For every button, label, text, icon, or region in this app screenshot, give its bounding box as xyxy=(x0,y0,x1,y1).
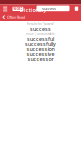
staticText: Often Read xyxy=(7,14,25,20)
staticText: succession xyxy=(26,45,54,53)
button[interactable]: Bookmarks xyxy=(73,5,80,12)
staticText: Dictionary xyxy=(19,6,46,13)
button[interactable]: Menu xyxy=(1,4,9,13)
staticText: success xyxy=(42,6,56,11)
staticText: Results for “success” xyxy=(27,22,54,26)
button[interactable]: Often Read xyxy=(2,14,25,20)
staticText: successfully xyxy=(25,40,56,48)
staticText: successor xyxy=(27,55,53,63)
staticText: successive xyxy=(26,50,54,58)
staticText: successful xyxy=(27,35,54,43)
staticText: WORD xyxy=(13,7,22,11)
staticText: noun | uncountable xyxy=(26,32,55,36)
staticText: success xyxy=(30,25,51,33)
